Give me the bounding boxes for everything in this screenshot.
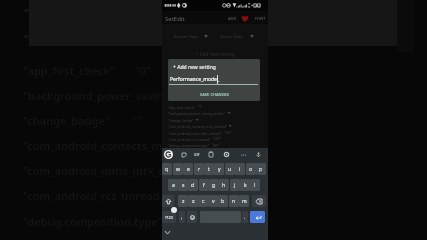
button[interactable]: Google search: [164, 150, 173, 159]
staticText: "com_android_mms_mtk_unread": [168, 131, 222, 136]
button[interactable]: Settings: [222, 150, 231, 159]
button[interactable]: f: [199, 179, 209, 191]
staticText: FONT: [255, 16, 266, 21]
button[interactable]: s: [178, 179, 188, 191]
button[interactable]: SAVE CHANGES: [168, 90, 260, 98]
button[interactable]: Backspace: [252, 195, 266, 207]
staticText: t: [208, 166, 210, 173]
staticText: s: [182, 182, 185, 189]
staticText: b: [221, 198, 225, 205]
staticText: ?123: [165, 215, 173, 220]
button[interactable]: Voice: [254, 150, 263, 159]
button[interactable]: "debug.composition.type": [168, 142, 274, 148]
button[interactable]: SetEdit: [165, 15, 185, 23]
button[interactable]: FONT: [255, 16, 266, 21]
staticText: u: [228, 166, 232, 173]
button[interactable]: r: [194, 163, 204, 175]
button[interactable]: i: [235, 163, 245, 175]
staticText: r: [198, 166, 201, 173]
button[interactable]: Emoji: [187, 211, 197, 223]
button[interactable]: "app_first_check": [168, 104, 274, 110]
staticText: Performance_mode_: [170, 76, 220, 83]
button[interactable]: ADD: [228, 16, 237, 21]
button[interactable]: Stickers: [179, 150, 188, 159]
button[interactable]: Hide keyboard: [163, 228, 171, 236]
button[interactable]: "change_badge": [168, 117, 274, 123]
button[interactable]: GIF: [192, 150, 201, 159]
staticText: n: [232, 198, 236, 205]
staticText: e: [187, 166, 190, 173]
staticText: SAVE CHANGES: [200, 92, 229, 97]
button[interactable]: l: [250, 179, 260, 191]
button[interactable]: Clipboard: [206, 150, 215, 159]
staticText: Secure Data: [220, 34, 243, 39]
staticText: "change_badge": [168, 118, 194, 123]
button[interactable]: "com_android_rcs_unread": [168, 136, 274, 142]
staticText: k: [244, 182, 247, 189]
button[interactable]: z: [178, 195, 188, 207]
staticText: q: [165, 166, 169, 173]
staticText: ▼: [229, 124, 232, 128]
button[interactable]: "com_android_contacts_mtk_unread": [168, 123, 274, 129]
staticText: l: [254, 182, 256, 189]
staticText: o: [249, 166, 253, 173]
button[interactable]: b: [218, 195, 228, 207]
staticText: m: [242, 198, 247, 205]
button[interactable]: p: [256, 163, 266, 175]
staticText: g: [212, 182, 216, 189]
staticText: "com_android_mms_mtk_u: [23, 163, 166, 178]
button[interactable]: v: [208, 195, 218, 207]
button[interactable]: Symbols: [162, 211, 176, 223]
button[interactable]: Favorites: [241, 14, 249, 22]
button[interactable]: g: [209, 179, 219, 191]
button[interactable]: c: [198, 195, 208, 207]
staticText: ▼: [196, 118, 199, 122]
button[interactable]: a: [168, 179, 178, 191]
staticText: SetEdit: [165, 15, 185, 23]
staticText: a: [172, 182, 175, 189]
staticText: + Add new setting: [196, 51, 235, 57]
staticText: f: [203, 182, 205, 189]
staticText: System Data: [174, 34, 198, 39]
button[interactable]: Shift: [162, 195, 174, 207]
staticText: c: [202, 198, 205, 205]
staticText: ,: [181, 214, 183, 221]
button[interactable]: Secure Data: [220, 32, 254, 41]
button[interactable]: t: [204, 163, 214, 175]
button[interactable]: "background_power_saving_enable": [168, 110, 274, 116]
button[interactable]: w: [173, 163, 183, 175]
staticText: .: [244, 214, 246, 221]
button[interactable]: .: [242, 211, 248, 223]
button[interactable]: "com_android_mms_mtk_unread": [168, 130, 274, 136]
staticText: GIF: [194, 152, 200, 157]
button[interactable]: Enter: [250, 211, 265, 223]
staticText: p: [259, 166, 263, 173]
button[interactable]: x: [188, 195, 198, 207]
button[interactable]: System Data: [174, 32, 208, 41]
button[interactable]: k: [240, 179, 250, 191]
button[interactable]: e: [183, 163, 193, 175]
staticText: "background_power_saving_enable": [168, 111, 226, 116]
staticText: "com_android_rcs_unread: [23, 188, 160, 203]
staticText: ▼: [228, 111, 231, 115]
button[interactable]: u: [225, 163, 235, 175]
staticText: "0": [198, 105, 203, 109]
staticText: x: [192, 198, 195, 205]
button[interactable]: h: [219, 179, 229, 191]
staticText: i: [239, 166, 241, 173]
button[interactable]: d: [188, 179, 198, 191]
button[interactable]: ,: [179, 211, 185, 223]
button[interactable]: q: [162, 163, 172, 175]
button[interactable]: More: [239, 150, 248, 159]
button[interactable]: y: [214, 163, 224, 175]
staticText: "207": [224, 131, 233, 135]
staticText: w: [176, 166, 180, 173]
staticText: "app_first_check" "0": [23, 63, 152, 78]
staticText: "change_badge" "": [23, 113, 143, 128]
button[interactable]: + Add new setting: [162, 50, 268, 58]
button[interactable]: j: [230, 179, 240, 191]
button[interactable]: n: [229, 195, 239, 207]
button[interactable]: m: [239, 195, 249, 207]
button[interactable]: o: [246, 163, 256, 175]
